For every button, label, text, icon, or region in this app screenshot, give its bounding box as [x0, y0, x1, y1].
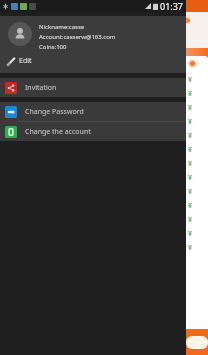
staticText: ¥ [188, 173, 193, 183]
staticText: ¥ [188, 131, 193, 141]
staticText: Change the account [25, 127, 91, 137]
staticText: ¥ [188, 243, 193, 253]
staticText: ¥ [188, 89, 193, 99]
other: Change Password [5, 106, 17, 118]
staticText: ¥ [188, 75, 193, 85]
staticText: Invitation [25, 83, 57, 93]
staticText: Account:casserw@163.com [39, 33, 116, 41]
button[interactable]: Invitation [0, 78, 186, 97]
button[interactable]: Change Password [0, 102, 186, 121]
button[interactable]: Edit [5, 54, 34, 68]
other: Invitation [5, 82, 17, 94]
staticText: Coins:100 [39, 43, 67, 51]
other: Change the account [5, 126, 17, 138]
staticText: ¥ [188, 103, 193, 113]
staticText: ¥ [188, 187, 193, 197]
staticText: ¥ [188, 229, 193, 239]
staticText: Edit [19, 56, 32, 66]
staticText: 01:37 [160, 0, 184, 12]
staticText: ¥ [188, 145, 193, 155]
staticText: ¥ [188, 159, 193, 169]
staticText: Nickname:casse [39, 23, 85, 31]
staticText: ¥ [188, 117, 193, 127]
staticText: ¥ [188, 201, 193, 211]
staticText: Change Password [25, 107, 84, 117]
button[interactable]: Action [186, 336, 208, 349]
button[interactable]: Change the account [0, 122, 186, 141]
staticText: ¥ [188, 215, 193, 225]
